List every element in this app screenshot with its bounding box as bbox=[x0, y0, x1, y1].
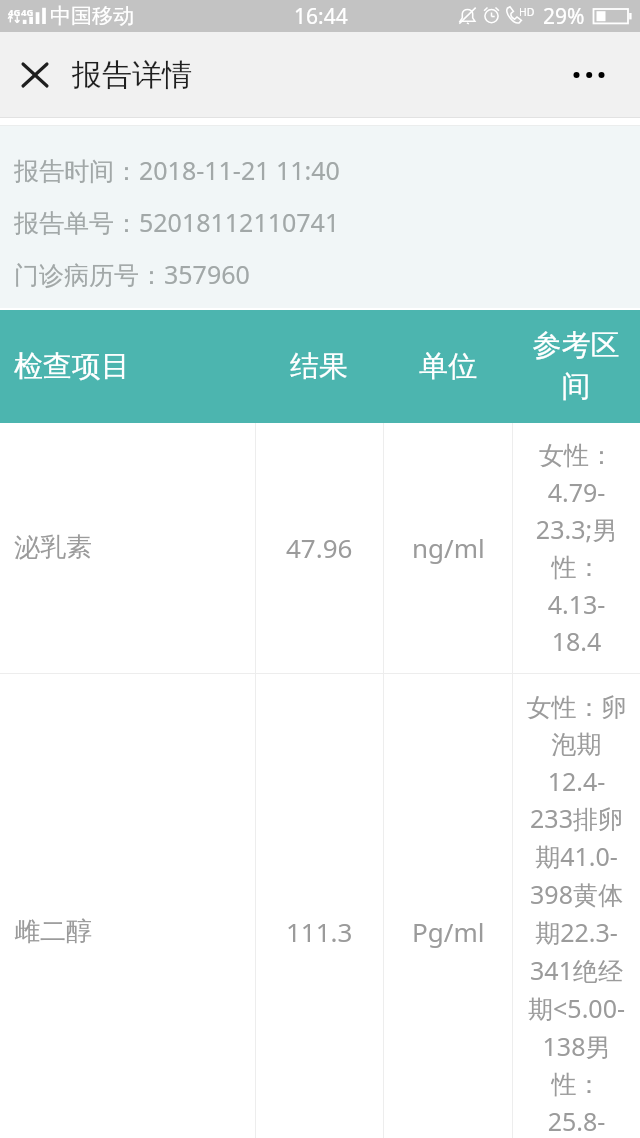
staticText: 泌乳素 bbox=[14, 531, 92, 564]
staticText: 门诊病历号：357960 bbox=[14, 257, 250, 291]
staticText: 女性： 4.79- 23.3;男 性： 4.13- 18.4 bbox=[513, 436, 640, 659]
staticText: ng/ml bbox=[412, 530, 485, 565]
staticText: 结果 bbox=[290, 348, 348, 385]
button[interactable]: Close bbox=[11, 51, 59, 99]
staticText: Pg/ml bbox=[412, 914, 485, 949]
staticText: 47.96 bbox=[286, 530, 353, 565]
button[interactable]: More options bbox=[553, 51, 625, 99]
staticText: 29% bbox=[543, 2, 585, 31]
staticText: 中国移动 bbox=[50, 3, 134, 29]
staticText: 4G bbox=[8, 6, 21, 19]
staticText: 111.3 bbox=[286, 914, 353, 949]
staticText: 雌二醇 bbox=[14, 915, 92, 948]
staticText: 报告单号：52018112110741 bbox=[14, 205, 340, 239]
staticText: 报告时间：2018-11-21 11:40 bbox=[14, 153, 340, 187]
staticText: 16:44 bbox=[294, 2, 348, 31]
staticText: 参考区 间 bbox=[512, 324, 640, 406]
staticText: 女性：卵 泡期 12.4- 233排卵 期41.0- 398黄体 期22.3- … bbox=[513, 688, 640, 1138]
staticText: 4G bbox=[21, 6, 34, 19]
staticText: 报告详情 bbox=[72, 56, 192, 94]
staticText: HD bbox=[519, 5, 535, 19]
staticText: 单位 bbox=[419, 348, 477, 385]
button[interactable]: 雌二醇 bbox=[0, 674, 640, 1138]
button[interactable]: 泌乳素 bbox=[0, 423, 640, 674]
staticText: 检查项目 bbox=[14, 348, 130, 385]
